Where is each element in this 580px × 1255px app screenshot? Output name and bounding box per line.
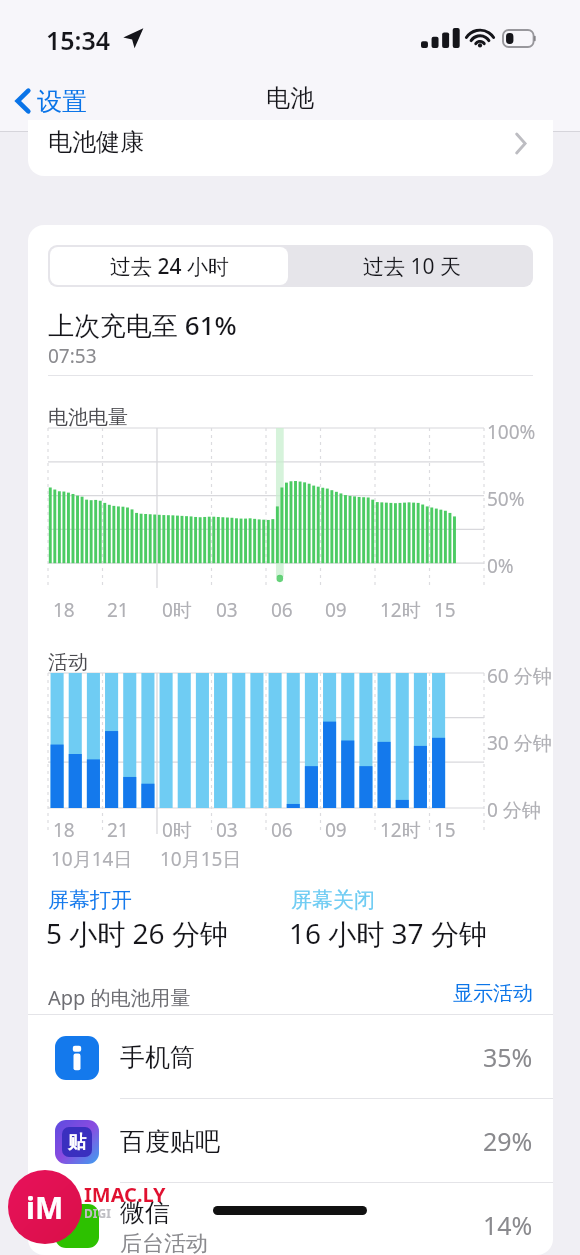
staticText: 15 (434, 817, 456, 843)
staticText: 显示活动 (453, 981, 533, 1006)
staticText: 屏幕关闭 (291, 887, 375, 913)
staticText: 50% (487, 486, 525, 512)
staticText: 10月15日 (160, 846, 242, 872)
button[interactable]: 手机筒 (28, 1015, 553, 1099)
staticText: 03 (216, 817, 238, 843)
staticText: 100% (487, 419, 536, 445)
staticText: 0% (487, 553, 514, 579)
staticText: 电池 (266, 83, 314, 113)
button[interactable]: 过去 24 小时 (50, 247, 288, 285)
staticText: 上次充电至 61% (48, 307, 237, 343)
staticText: 18 (53, 817, 75, 843)
staticText: iM (26, 1187, 64, 1228)
staticText: 12时 (380, 817, 421, 843)
staticText: 过去 24 小时 (110, 252, 229, 281)
button[interactable]: 贴 (28, 1099, 553, 1183)
staticText: 手机筒 (120, 1042, 195, 1073)
staticText: 03 (216, 597, 238, 623)
button[interactable]: 过去 10 天 (290, 245, 533, 287)
staticText: 18 (53, 597, 75, 623)
staticText: 电池电量 (48, 405, 128, 430)
staticText: 09 (325, 817, 347, 843)
staticText: 15:34 (46, 23, 111, 57)
staticText: 07:53 (48, 343, 97, 369)
staticText: 百度贴吧 (120, 1126, 220, 1157)
staticText: 0 分钟 (487, 797, 541, 823)
staticText: 29% (483, 1124, 533, 1158)
staticText: 14% (483, 1208, 533, 1242)
staticText: 0时 (162, 817, 192, 843)
staticText: 06 (271, 817, 293, 843)
staticText: 06 (271, 597, 293, 623)
button[interactable]: 显示活动 (428, 977, 533, 1009)
staticText: DIGI (84, 1205, 111, 1221)
staticText: 贴 (68, 1131, 86, 1154)
staticText: 活动 (48, 650, 88, 675)
staticText: 后台活动 (120, 1230, 208, 1255)
button[interactable]: 电池健康 (28, 120, 553, 176)
staticText: 过去 10 天 (363, 252, 461, 281)
staticText: 0时 (162, 597, 192, 623)
staticText: 16 小时 37 分钟 (289, 914, 487, 952)
staticText: 微信 (120, 1197, 170, 1228)
staticText: 10月14日 (51, 846, 133, 872)
staticText: 21 (107, 817, 129, 843)
staticText: 21 (107, 597, 129, 623)
staticText: App 的电池用量 (48, 984, 191, 1011)
staticText: 09 (325, 597, 347, 623)
button[interactable]: 设置 (10, 79, 93, 123)
staticText: 设置 (37, 86, 87, 117)
staticText: 5 小时 26 分钟 (46, 914, 228, 952)
staticText: IMAC.LY (84, 1181, 166, 1208)
staticText: 15 (434, 597, 456, 623)
staticText: 电池健康 (48, 127, 144, 157)
staticText: 60 分钟 (487, 663, 552, 689)
staticText: 12时 (380, 597, 421, 623)
staticText: 30 分钟 (487, 730, 552, 756)
staticText: 35% (483, 1040, 533, 1074)
staticText: 屏幕打开 (48, 887, 132, 913)
button[interactable]: 微信 (28, 1183, 553, 1255)
